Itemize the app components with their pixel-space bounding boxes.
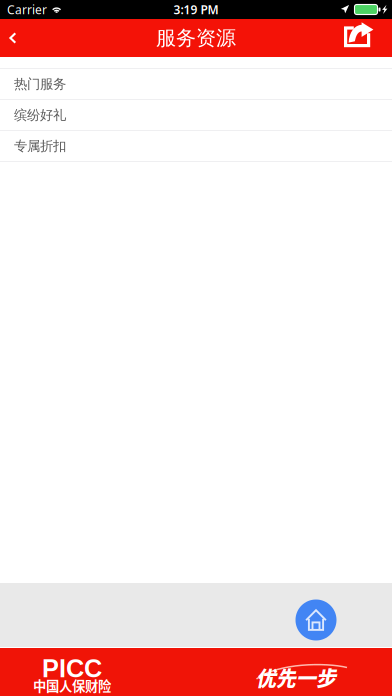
staticText: 缤纷好礼: [14, 107, 66, 123]
button[interactable]: 缤纷好礼: [0, 100, 392, 131]
staticText: PICC: [42, 654, 102, 683]
staticText: 3:19 PM: [173, 1, 218, 17]
staticText: 热门服务: [14, 76, 66, 92]
button[interactable]: 专属折扣: [0, 131, 392, 162]
button[interactable]: Back: [0, 19, 52, 57]
button[interactable]: 热门服务: [0, 69, 392, 100]
staticText: 专属折扣: [14, 138, 66, 154]
button[interactable]: Share: [330, 19, 392, 57]
staticText: 中国人保财险: [33, 676, 111, 695]
staticText: 服务资源: [156, 26, 236, 50]
button[interactable]: Home: [288, 591, 344, 649]
staticText: Carrier: [7, 1, 47, 17]
staticText: 优先一步: [256, 663, 336, 692]
